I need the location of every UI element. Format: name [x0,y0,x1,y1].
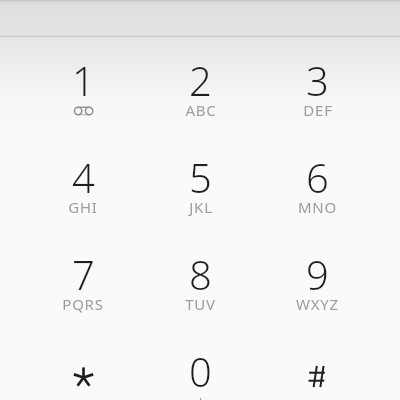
staticText: 9 [306,247,329,301]
button[interactable]: Two A B C [142,37,259,134]
staticText: + [196,391,206,400]
staticText: 4 [72,150,95,204]
staticText: 2 [189,53,212,107]
staticText: GHI [68,197,98,217]
button[interactable]: Three D E F [259,37,376,134]
button[interactable]: Nine W X Y Z [259,231,376,328]
staticText: 8 [189,247,212,301]
button[interactable]: Eight T U V [142,231,259,328]
staticText: 5 [189,150,212,204]
staticText: 6 [306,150,329,204]
button[interactable]: Seven P Q R S [24,231,142,328]
staticText: JKL [189,197,213,217]
staticText: 3 [306,53,329,107]
button[interactable]: Pound [259,328,376,400]
button[interactable]: One, voicemail [24,37,142,134]
button[interactable]: Four G H I [24,134,142,231]
staticText: 0 [189,344,212,398]
staticText: WXYZ [296,294,339,314]
button[interactable]: Six M N O [259,134,376,231]
staticText: 1 [72,53,95,107]
staticText: 7 [72,247,95,301]
staticText: DEF [303,100,333,120]
staticText: PQRS [62,294,104,314]
staticText: TUV [185,294,216,314]
button[interactable]: Phone number [0,0,400,36]
button[interactable]: Five J K L [142,134,259,231]
button[interactable]: Zero plus [142,328,259,400]
staticText: MNO [298,197,337,217]
staticText: ABC [185,100,217,120]
button[interactable]: Star [24,328,142,400]
